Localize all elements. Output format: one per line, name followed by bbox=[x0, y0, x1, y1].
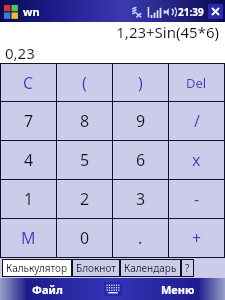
staticText: ( bbox=[82, 72, 87, 94]
staticText: / bbox=[194, 110, 200, 132]
staticText: M bbox=[21, 227, 36, 249]
button[interactable]: 1 bbox=[1, 180, 56, 218]
staticText: C bbox=[23, 72, 34, 94]
button[interactable]: / bbox=[169, 102, 224, 140]
staticText: 5 bbox=[80, 149, 90, 171]
button[interactable]: M bbox=[1, 219, 56, 257]
staticText: Калькулятор bbox=[6, 261, 68, 275]
button[interactable]: Файл bbox=[32, 282, 63, 297]
staticText: 4 bbox=[24, 149, 34, 171]
staticText: 6 bbox=[136, 149, 146, 171]
staticText: 7 bbox=[24, 110, 34, 132]
button[interactable]: ) bbox=[113, 64, 168, 101]
button[interactable]: Калькулятор bbox=[6, 259, 68, 277]
staticText: 3 bbox=[136, 188, 146, 210]
button[interactable]: - bbox=[169, 180, 224, 218]
staticText: 21:39 bbox=[178, 5, 204, 19]
button[interactable]: Del bbox=[169, 64, 224, 101]
button[interactable]: + bbox=[169, 219, 224, 257]
staticText: 2 bbox=[80, 188, 90, 210]
button[interactable]: Блокнот bbox=[76, 259, 116, 277]
button[interactable]: 0 bbox=[57, 219, 112, 257]
staticText: 1 bbox=[24, 188, 34, 210]
button[interactable]: 4 bbox=[1, 141, 56, 179]
button[interactable]: Календарь bbox=[124, 259, 177, 277]
staticText: wn bbox=[23, 4, 40, 19]
button[interactable]: C bbox=[1, 64, 56, 101]
button[interactable]: Меню bbox=[161, 282, 195, 297]
staticText: - bbox=[194, 188, 200, 210]
button[interactable]: Keyboard bbox=[104, 282, 122, 296]
staticText: Блокнот bbox=[76, 261, 116, 275]
staticText: + bbox=[192, 227, 202, 249]
button[interactable]: 6 bbox=[113, 141, 168, 179]
button[interactable]: 9 bbox=[113, 102, 168, 140]
button[interactable]: 2 bbox=[57, 180, 112, 218]
staticText: Del bbox=[186, 74, 207, 92]
staticText: 1,23+Sin(45*6) bbox=[116, 22, 219, 42]
staticText: Календарь bbox=[124, 261, 177, 275]
staticText: ) bbox=[138, 72, 143, 94]
button[interactable]: 8 bbox=[57, 102, 112, 140]
button[interactable]: 3 bbox=[113, 180, 168, 218]
staticText: 8 bbox=[80, 110, 90, 132]
staticText: ? bbox=[185, 261, 190, 275]
button[interactable]: . bbox=[113, 219, 168, 257]
button[interactable]: ( bbox=[57, 64, 112, 101]
button[interactable]: x bbox=[169, 141, 224, 179]
button[interactable]: Close bbox=[208, 4, 223, 19]
staticText: 9 bbox=[136, 110, 146, 132]
button[interactable]: 7 bbox=[1, 102, 56, 140]
staticText: 0,23 bbox=[5, 43, 35, 63]
staticText: . bbox=[138, 227, 143, 249]
button[interactable]: ? bbox=[185, 259, 190, 277]
staticText: 0 bbox=[80, 227, 90, 249]
button[interactable]: 5 bbox=[57, 141, 112, 179]
staticText: x bbox=[192, 149, 201, 171]
